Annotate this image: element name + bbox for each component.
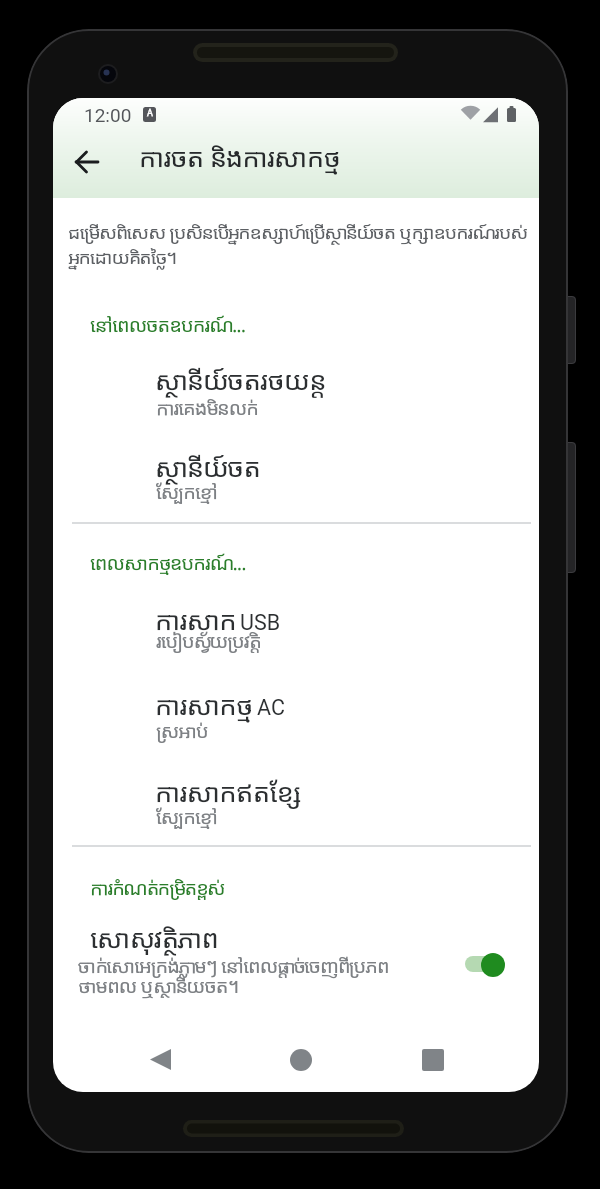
button[interactable] bbox=[65, 140, 109, 184]
staticText: ការគេងមិនលក់ bbox=[156, 399, 258, 426]
staticText: ថាមពល ឬស្ថានីយចត។ bbox=[78, 977, 239, 1004]
staticText: ស្ថានីយ៍ចតរថយន្ត bbox=[155, 368, 326, 405]
staticText: ពេលសាកថ្មឧបករណ៍... bbox=[90, 554, 246, 581]
staticText: ស្រអាប់ bbox=[156, 722, 207, 749]
staticText: ចាក់សោអេក្រង់ភ្លាមៗ នៅពេលផ្ដាច់ចេញពីប្រភ… bbox=[78, 957, 389, 984]
staticText: USB bbox=[240, 610, 281, 635]
staticText: នៅពេលចតឧបករណ៍... bbox=[90, 316, 246, 343]
staticText: A bbox=[147, 108, 153, 119]
button[interactable]: សោសុវត្ថិភាព bbox=[53, 910, 539, 1010]
staticText: ការចត និងការសាកថ្ម bbox=[139, 145, 340, 182]
button[interactable]: ការសាកឥតខ្សែ bbox=[53, 762, 539, 846]
staticText: ជម្រើសពិសេស ប្រសិនបើអ្នកឧស្សាហ៍ប្រើស្ថាន… bbox=[68, 223, 536, 250]
button[interactable]: ការសាកថ្ម bbox=[53, 675, 539, 759]
button[interactable] bbox=[457, 944, 513, 985]
button[interactable]: ស្ថានីយ៍ចតរថយន្ត bbox=[53, 350, 539, 434]
staticText: ស្បែកខ្មៅ bbox=[156, 483, 217, 510]
staticText: សោសុវត្ថិភាព bbox=[90, 926, 219, 963]
staticText: អ្នកដោយគិតថ្លៃ។ bbox=[68, 248, 177, 275]
button[interactable] bbox=[411, 1038, 455, 1082]
staticText: ការសាក bbox=[155, 608, 237, 645]
staticText: ការកំណត់កម្រិតខ្ពស់ bbox=[90, 879, 224, 906]
button[interactable] bbox=[279, 1038, 323, 1082]
staticText: ការសាកឥតខ្សែ bbox=[155, 780, 301, 817]
staticText: ស្ថានីយ៍ចត bbox=[155, 455, 261, 492]
staticText: ស្បែកខ្មៅ bbox=[156, 808, 217, 835]
button[interactable] bbox=[139, 1038, 182, 1081]
button[interactable]: ការសាក bbox=[53, 590, 539, 674]
staticText: ការសាកថ្ម bbox=[155, 693, 252, 730]
button[interactable]: ស្ថានីយ៍ចត bbox=[53, 437, 539, 521]
staticText: 12:00 bbox=[84, 104, 132, 126]
staticText: AC bbox=[257, 695, 285, 720]
staticText: របៀបស្វ័យប្រវត្តិ bbox=[156, 632, 259, 659]
